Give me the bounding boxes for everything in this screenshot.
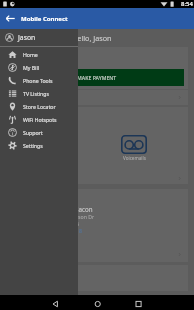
staticText: Macon [73,205,93,213]
button[interactable]: WiFi Hotspots [0,113,78,126]
button[interactable] [6,90,188,105]
button[interactable]: My Bill [0,61,78,74]
button[interactable]: Settings [0,139,78,152]
staticText: 318 [73,227,82,234]
button[interactable]: Home [0,48,78,61]
staticText: Jason [18,33,36,42]
staticText: Home [23,51,38,58]
button[interactable]: Voicemails [121,135,147,161]
staticText: 06 [73,220,79,227]
button[interactable]: Back [0,8,21,29]
button[interactable]: Home [88,295,108,310]
staticText: MAKE PAYMENT [77,74,117,81]
button[interactable]: Recent apps [129,295,149,310]
staticText: Store Locator [23,103,56,110]
staticText: Phone Tools [23,77,53,84]
staticText: TV Listings [23,90,49,97]
staticText: Hello, Jason [72,33,112,43]
staticText: Voicemails [123,155,146,161]
button[interactable]: Support [0,126,78,139]
button[interactable]: MAKE PAYMENT [10,69,184,86]
staticText: Support [23,129,43,136]
button[interactable]: Jason [0,29,78,46]
button[interactable]: TV Listings [0,87,78,100]
button[interactable] [6,172,188,184]
button[interactable]: Back [45,295,65,310]
button[interactable]: Store Locator [0,100,78,113]
staticText: Settings [23,142,43,149]
staticText: My Bill [23,64,40,71]
staticText: Mobile Connect [21,15,68,23]
staticText: 8:54 [181,0,193,8]
staticText: erson Dr [73,213,95,220]
button[interactable]: Phone Tools [0,74,78,87]
staticText: WiFi Hotspots [23,116,57,123]
